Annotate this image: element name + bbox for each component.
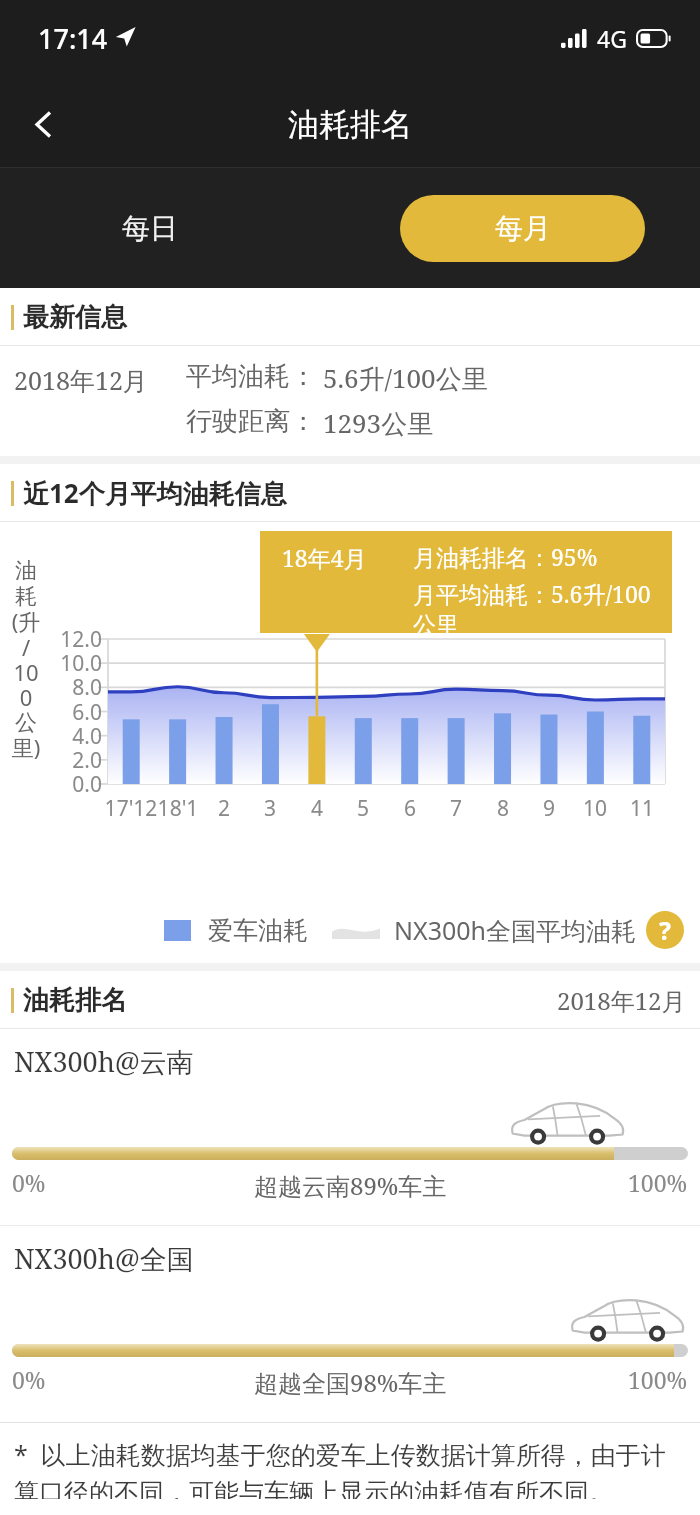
staticText: 17'12 <box>101 794 161 823</box>
staticText: 4.0 <box>50 722 102 751</box>
staticText: 2018年12月 <box>557 984 686 1017</box>
button[interactable]: 每日 <box>96 196 204 261</box>
staticText: 3 <box>240 794 300 823</box>
staticText: 5.6升/100公里 <box>323 360 488 396</box>
staticText: 0% <box>12 1364 46 1395</box>
staticText: 2018年12月 <box>14 363 148 397</box>
staticText: NX300h@全国 <box>14 1240 194 1277</box>
staticText: 1293公里 <box>323 405 434 441</box>
staticText: 10.0 <box>50 649 102 678</box>
staticText: 0.0 <box>50 770 102 799</box>
staticText: * 以上油耗数据均基于您的爱车上传数据计算所得，由于计算口径的不同，可能与车辆上… <box>14 1437 688 1499</box>
staticText: 近12个月平均油耗信息 <box>23 475 287 511</box>
staticText: 月油耗排名：95% <box>413 541 598 572</box>
staticText: 每月 <box>495 211 551 246</box>
staticText: 超越云南89%车主 <box>254 1169 447 1202</box>
staticText: 17:14 <box>38 20 108 57</box>
staticText: 18'1 <box>148 794 208 823</box>
button[interactable]: Help <box>646 911 684 949</box>
staticText: 100% <box>628 1167 688 1198</box>
staticText: 6.0 <box>50 698 102 727</box>
button[interactable]: 每月 <box>400 195 645 262</box>
staticText: 爱车油耗 <box>208 915 308 946</box>
staticText: 0% <box>12 1167 46 1198</box>
staticText: 2 <box>194 794 254 823</box>
staticText: 油耗排名 <box>288 105 412 144</box>
staticText: 11 <box>612 794 672 823</box>
button[interactable]: Back <box>0 80 86 168</box>
staticText: 10 <box>565 794 625 823</box>
staticText: 每日 <box>122 211 178 246</box>
staticText: 平均油耗： <box>186 360 316 393</box>
staticText: 油耗排名 <box>23 984 127 1017</box>
staticText: NX300h@云南 <box>14 1043 194 1080</box>
staticText: NX300h全国平均油耗 <box>394 913 637 947</box>
staticText: 8.0 <box>50 673 102 702</box>
staticText: 超越全国98%车主 <box>254 1366 447 1399</box>
staticText: 100% <box>628 1364 688 1395</box>
staticText: 月平均油耗：5.6升/100公里 <box>413 578 672 633</box>
staticText: 5 <box>333 794 393 823</box>
staticText: 油耗(升/100公里) <box>11 557 41 762</box>
staticText: 2.0 <box>50 746 102 775</box>
staticText: 最新信息 <box>23 301 127 334</box>
staticText: 7 <box>426 794 486 823</box>
staticText: 行驶距离： <box>186 405 316 438</box>
staticText: ? <box>659 913 671 947</box>
staticText: 8 <box>473 794 533 823</box>
staticText: 9 <box>519 794 579 823</box>
staticText: 6 <box>380 794 440 823</box>
staticText: 4 <box>287 794 347 823</box>
staticText: 18年4月 <box>282 542 367 573</box>
staticText: 4G <box>597 23 627 54</box>
staticText: 12.0 <box>50 625 102 654</box>
button[interactable]: NX300h@云南 <box>0 1029 700 1225</box>
button[interactable]: NX300h@全国 <box>0 1226 700 1422</box>
